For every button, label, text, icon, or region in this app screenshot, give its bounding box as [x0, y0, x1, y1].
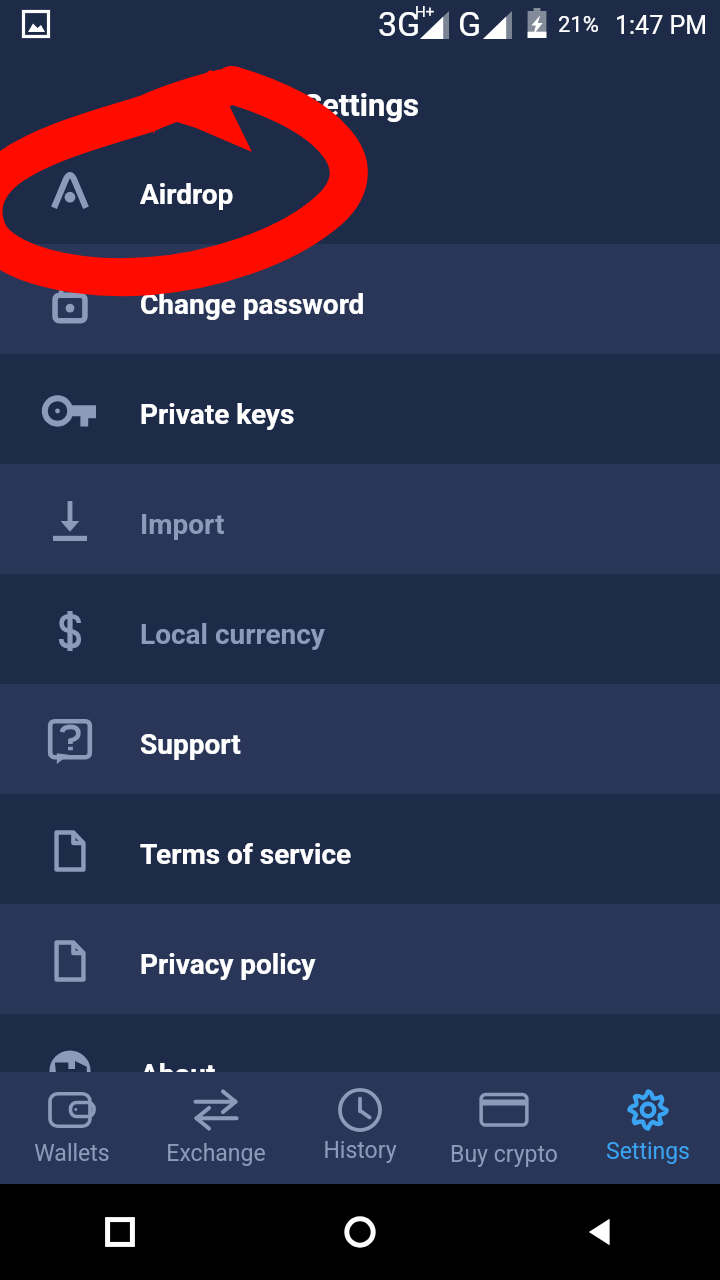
staticText: Airdrop	[140, 178, 234, 211]
staticText: 3G	[378, 4, 421, 44]
other: Back	[580, 1212, 620, 1252]
other: Screenshot	[0, 0, 720, 54]
staticText: Exchange	[166, 1140, 266, 1167]
staticText: Privacy policy	[140, 948, 316, 981]
staticText: Import	[140, 508, 225, 541]
button[interactable]: Terms of service	[0, 794, 720, 904]
staticText: Local currency	[140, 618, 325, 651]
button[interactable]: About	[0, 1014, 720, 1124]
staticText: G	[458, 4, 482, 44]
button[interactable]: Wallets	[0, 1072, 144, 1184]
staticText: Settings	[606, 1138, 690, 1165]
staticText: Wallets	[34, 1140, 110, 1167]
button[interactable]: Change password	[0, 244, 720, 354]
staticText: History	[323, 1137, 397, 1164]
other: Recents	[100, 1212, 140, 1252]
staticText: 21%	[558, 12, 599, 38]
staticText: Buy crypto	[450, 1141, 558, 1168]
other: Home	[340, 1212, 380, 1252]
button[interactable]: Import	[0, 464, 720, 574]
button[interactable]: Settings	[576, 1072, 720, 1184]
staticText: H+	[415, 3, 435, 21]
staticText: About	[140, 1058, 216, 1091]
staticText: Private keys	[140, 398, 295, 431]
button[interactable]: Buy crypto	[432, 1072, 576, 1184]
button[interactable]: Support	[0, 684, 720, 794]
button[interactable]: History	[288, 1072, 432, 1184]
staticText: 1:47 PM	[615, 11, 708, 40]
button[interactable]: Local currency	[0, 574, 720, 684]
staticText: Change password	[140, 288, 365, 321]
staticText: Settings	[303, 87, 420, 123]
button[interactable]: Exchange	[144, 1072, 288, 1184]
button[interactable]: Airdrop	[0, 134, 720, 244]
button[interactable]: Private keys	[0, 354, 720, 464]
staticText: Support	[140, 728, 241, 761]
staticText: Terms of service	[140, 838, 352, 871]
button[interactable]: Privacy policy	[0, 904, 720, 1014]
